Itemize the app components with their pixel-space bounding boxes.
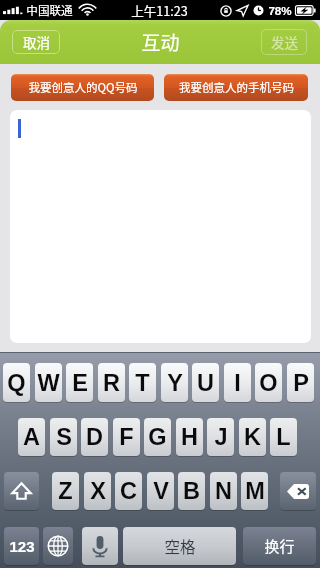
button[interactable]: R (98, 363, 125, 402)
staticText: 取消 (23, 32, 50, 52)
staticText: J (214, 424, 228, 450)
staticText: G (148, 424, 167, 450)
staticText: W (37, 370, 60, 396)
button[interactable]: C (115, 472, 142, 510)
button[interactable]: X (84, 472, 111, 510)
button[interactable]: P (287, 363, 314, 402)
button[interactable]: N (210, 472, 237, 510)
staticText: B (183, 478, 200, 504)
button[interactable]: 我要创意人的手机号码 (164, 74, 308, 101)
button[interactable]: L (270, 418, 297, 456)
staticText: 互动 (141, 28, 180, 56)
staticText: T (135, 370, 150, 396)
button[interactable]: H (176, 418, 203, 456)
button[interactable]: Y (161, 363, 188, 402)
staticText: 78% (268, 4, 292, 17)
staticText: M (245, 478, 265, 504)
staticText: D (86, 424, 103, 450)
staticText: O (259, 370, 278, 396)
staticText: 上午11:23 (131, 1, 188, 19)
staticText: 我要创意人的QQ号码 (28, 79, 138, 96)
staticText: C (120, 478, 137, 504)
staticText: 123 (9, 538, 35, 555)
button[interactable]: Q (3, 363, 30, 402)
button[interactable]: 123 (4, 527, 39, 565)
button[interactable]: K (239, 418, 266, 456)
button[interactable]: U (192, 363, 219, 402)
staticText: 发送 (271, 32, 298, 52)
staticText: X (90, 478, 106, 504)
staticText: Q (7, 370, 26, 396)
staticText: S (56, 424, 72, 450)
button[interactable]: V (147, 472, 174, 510)
button[interactable]: Shift (4, 472, 39, 510)
button[interactable]: D (81, 418, 108, 456)
button[interactable]: E (66, 363, 93, 402)
button[interactable]: M (241, 472, 268, 510)
button[interactable]: T (129, 363, 156, 402)
button[interactable]: 空格 (123, 527, 236, 565)
staticText: 我要创意人的手机号码 (179, 79, 294, 96)
staticText: E (72, 370, 88, 396)
button[interactable]: 发送 (261, 29, 307, 55)
button[interactable]: G (144, 418, 171, 456)
staticText: V (153, 478, 169, 504)
button[interactable] (10, 110, 311, 343)
staticText: Y (167, 370, 183, 396)
staticText: 换行 (264, 535, 295, 557)
staticText: H (181, 424, 198, 450)
button[interactable]: W (35, 363, 62, 402)
button[interactable]: J (207, 418, 234, 456)
button[interactable]: O (255, 363, 282, 402)
button[interactable]: B (178, 472, 205, 510)
button[interactable]: S (50, 418, 77, 456)
button[interactable]: Backspace (280, 472, 316, 510)
button[interactable]: A (18, 418, 45, 456)
staticText: N (215, 478, 232, 504)
staticText: F (119, 424, 134, 450)
button[interactable]: F (113, 418, 140, 456)
button[interactable]: 换行 (243, 527, 316, 565)
staticText: Z (58, 478, 73, 504)
button[interactable]: 我要创意人的QQ号码 (11, 74, 154, 101)
staticText: I (234, 370, 241, 396)
button[interactable]: Z (52, 472, 79, 510)
staticText: 中国联通 (26, 2, 73, 19)
staticText: U (197, 370, 214, 396)
button[interactable]: 取消 (12, 30, 60, 54)
staticText: 空格 (164, 535, 196, 557)
button[interactable]: I (224, 363, 251, 402)
staticText: A (23, 424, 40, 450)
button[interactable]: Voice input (82, 527, 118, 565)
staticText: L (276, 424, 291, 450)
staticText: R (103, 370, 120, 396)
staticText: K (244, 424, 261, 450)
staticText: P (293, 370, 309, 396)
button[interactable]: Switch keyboard language (43, 527, 73, 565)
